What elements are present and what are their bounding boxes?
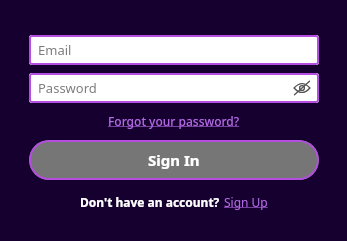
button[interactable]: Email	[29, 35, 319, 65]
button[interactable]: Show password	[291, 77, 313, 99]
staticText: Don't have an account?	[80, 194, 220, 210]
button[interactable]: Sign Up	[224, 193, 268, 211]
staticText: Sign Up	[224, 194, 268, 210]
staticText: Email	[38, 41, 72, 59]
staticText: Password	[38, 79, 97, 97]
staticText: Sign In	[148, 150, 200, 170]
button[interactable]: Password	[29, 73, 319, 103]
button[interactable]: Sign In	[29, 140, 319, 180]
button[interactable]: Forgot your password?	[106, 112, 242, 130]
staticText: Forgot your password?	[108, 113, 240, 129]
